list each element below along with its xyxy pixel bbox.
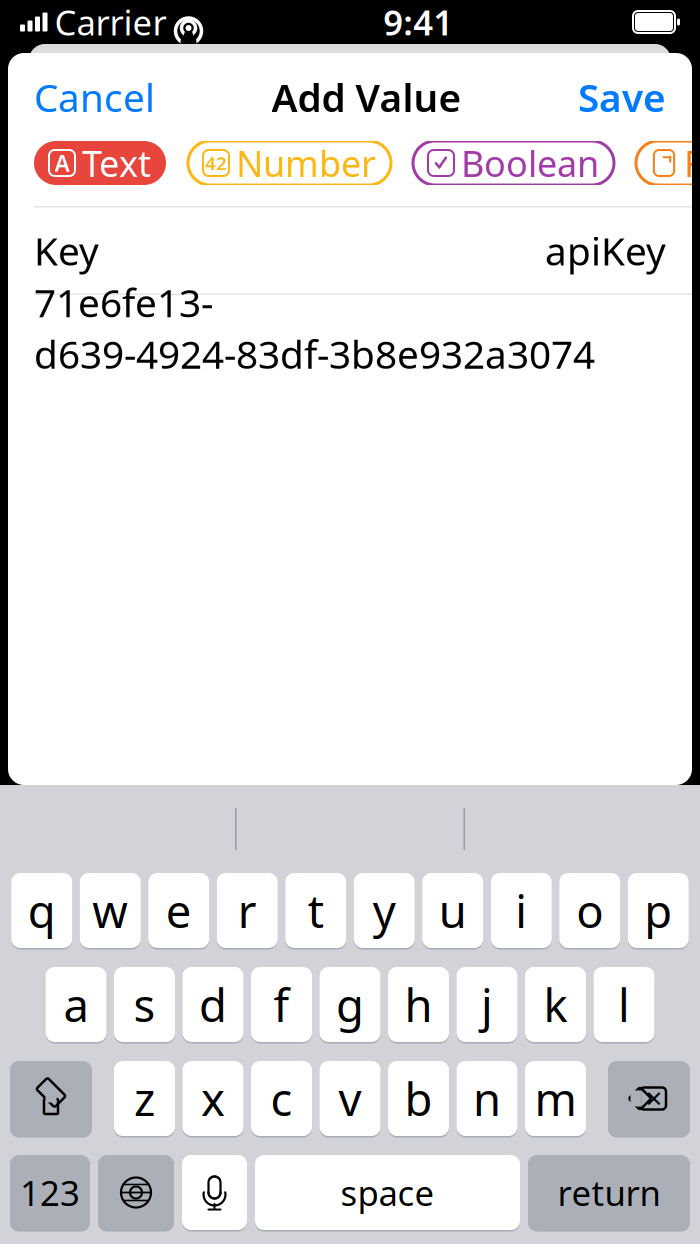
- staticText: 9:41: [383, 0, 453, 45]
- button[interactable]: r: [217, 873, 278, 948]
- staticText: h: [404, 974, 432, 1035]
- staticText: 42: [205, 151, 227, 175]
- button[interactable]: t: [285, 873, 346, 948]
- staticText: q: [28, 880, 56, 941]
- button[interactable]: return: [528, 1155, 690, 1230]
- button[interactable]: e: [148, 873, 209, 948]
- button[interactable]: Cancel: [34, 71, 155, 123]
- staticText: k: [543, 974, 567, 1035]
- button[interactable]: l: [593, 967, 654, 1042]
- staticText: A: [54, 148, 69, 178]
- staticText: a: [63, 974, 88, 1035]
- button[interactable]: Boolean: [413, 141, 614, 185]
- button[interactable]: A: [34, 141, 166, 185]
- button[interactable]: p: [628, 873, 689, 948]
- staticText: v: [338, 1068, 361, 1129]
- staticText: Number: [236, 139, 376, 187]
- staticText: n: [473, 1068, 501, 1129]
- staticText: Save: [578, 71, 666, 123]
- button[interactable]: h: [388, 967, 449, 1042]
- staticText: l: [618, 974, 630, 1035]
- staticText: Text: [82, 139, 151, 187]
- button[interactable]: a: [45, 967, 106, 1042]
- staticText: apiKey: [545, 225, 666, 276]
- button[interactable]: File: [636, 141, 700, 185]
- button[interactable]: c: [251, 1061, 312, 1136]
- staticText: t: [308, 880, 324, 941]
- staticText: return: [557, 1169, 660, 1215]
- staticText: o: [576, 880, 603, 941]
- staticText: File: [684, 139, 700, 187]
- button[interactable]: q: [11, 873, 72, 948]
- staticText: s: [133, 974, 155, 1035]
- button[interactable]: z: [114, 1061, 175, 1136]
- staticText: u: [439, 880, 467, 941]
- staticText: c: [270, 1068, 292, 1129]
- staticText: m: [534, 1068, 576, 1129]
- staticText: Key: [34, 225, 99, 276]
- button[interactable]: y: [354, 873, 415, 948]
- button[interactable]: Save: [578, 71, 666, 123]
- button[interactable]: i: [491, 873, 552, 948]
- staticText: d: [199, 974, 227, 1035]
- staticText: f: [273, 974, 289, 1035]
- staticText: 71e6fe13-d639-4924-83df-3b8e932a3074: [34, 277, 595, 379]
- staticText: Carrier: [54, 0, 166, 45]
- button[interactable]: g: [319, 967, 380, 1042]
- button[interactable]: v: [319, 1061, 380, 1136]
- staticText: i: [515, 880, 527, 941]
- button[interactable]: b: [388, 1061, 449, 1136]
- staticText: p: [644, 880, 672, 941]
- button[interactable]: s: [114, 967, 175, 1042]
- button[interactable]: m: [525, 1061, 586, 1136]
- staticText: Add Value: [271, 71, 461, 123]
- staticText: ×: [645, 1078, 662, 1117]
- staticText: space: [340, 1169, 434, 1215]
- staticText: e: [166, 880, 192, 941]
- button[interactable]: Dictate: [182, 1155, 247, 1230]
- staticText: z: [134, 1068, 155, 1129]
- button[interactable]: u: [422, 873, 483, 948]
- button[interactable]: Shift: [10, 1061, 92, 1136]
- staticText: j: [481, 974, 493, 1035]
- staticText: r: [238, 880, 257, 941]
- staticText: 123: [20, 1169, 80, 1215]
- button[interactable]: k: [525, 967, 586, 1042]
- button[interactable]: x: [182, 1061, 243, 1136]
- button[interactable]: Delete: [608, 1061, 690, 1136]
- staticText: y: [373, 880, 396, 941]
- staticText: Boolean: [461, 139, 599, 187]
- button[interactable]: f: [251, 967, 312, 1042]
- button[interactable]: Next keyboard: [98, 1155, 174, 1230]
- staticText: g: [336, 974, 364, 1035]
- button[interactable]: n: [456, 1061, 517, 1136]
- staticText: w: [92, 880, 128, 941]
- button[interactable]: j: [456, 967, 517, 1042]
- button[interactable]: w: [80, 873, 141, 948]
- staticText: Cancel: [34, 71, 155, 123]
- button[interactable]: 42: [188, 141, 391, 185]
- button[interactable]: 123: [10, 1155, 90, 1230]
- staticText: b: [404, 1068, 432, 1129]
- staticText: x: [201, 1068, 225, 1129]
- button[interactable]: space: [255, 1155, 520, 1230]
- button[interactable]: d: [182, 967, 243, 1042]
- button[interactable]: o: [559, 873, 620, 948]
